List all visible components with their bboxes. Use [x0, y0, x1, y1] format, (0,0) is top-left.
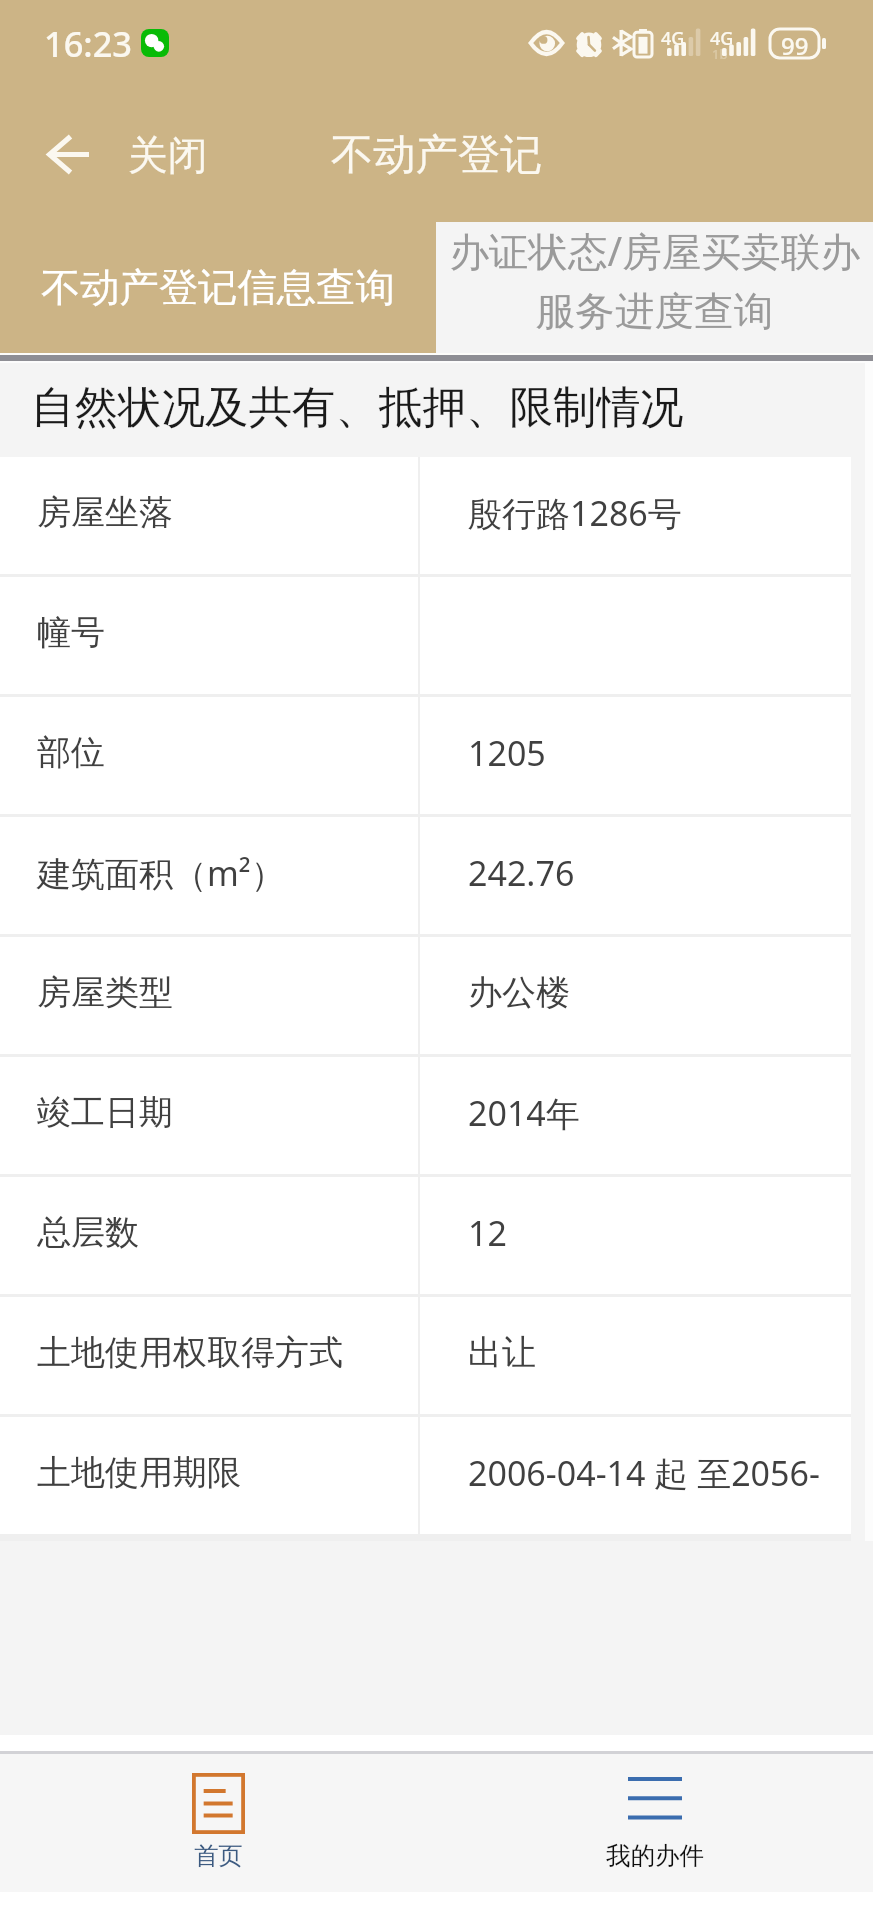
staticText: 房屋坐落	[37, 491, 173, 534]
staticText: 出让	[468, 1331, 536, 1374]
staticText: 土地使用期限	[37, 1451, 241, 1494]
staticText: 殷行路1286号	[468, 490, 682, 536]
button[interactable]: 办证状态/房屋买卖联办 服务进度查询	[436, 222, 873, 353]
staticText: 幢号	[37, 611, 105, 654]
button[interactable]: 首页	[0, 1754, 436, 1892]
staticText: 4G	[661, 26, 685, 51]
staticText: 1b	[712, 45, 728, 63]
staticText: 自然状况及共有、抵押、限制情况	[31, 380, 684, 435]
staticText: 16:23	[44, 20, 133, 67]
staticText: 办公楼	[468, 971, 570, 1014]
staticText: 房屋类型	[37, 971, 173, 1014]
staticText: 242.76	[468, 850, 575, 896]
button[interactable]: 我的办件	[436, 1754, 873, 1892]
staticText: 关闭	[128, 131, 208, 181]
staticText: 竣工日期	[37, 1091, 173, 1134]
staticText: 12	[468, 1210, 507, 1256]
staticText: 不动产登记信息查询	[41, 263, 395, 313]
staticText: 1205	[468, 730, 546, 776]
staticText: 总层数	[37, 1211, 139, 1254]
staticText: 99	[781, 29, 809, 58]
staticText: 部位	[37, 731, 105, 774]
staticText: 土地使用权取得方式	[37, 1331, 343, 1374]
button[interactable]: 不动产登记信息查询	[0, 222, 436, 353]
staticText: 2014年	[468, 1090, 580, 1136]
staticText: 首页	[194, 1840, 243, 1871]
button[interactable]: 关闭	[118, 86, 218, 222]
button[interactable]: Back	[30, 86, 106, 222]
staticText: 不动产登记	[331, 128, 543, 181]
staticText: 建筑面积（m²）	[37, 850, 285, 896]
staticText: 我的办件	[606, 1840, 704, 1871]
staticText: 4G	[710, 26, 734, 51]
staticText: 2006-04-14 起 至2056-	[468, 1450, 820, 1496]
staticText: 办证状态/房屋买卖联办 服务进度查询	[449, 224, 860, 337]
